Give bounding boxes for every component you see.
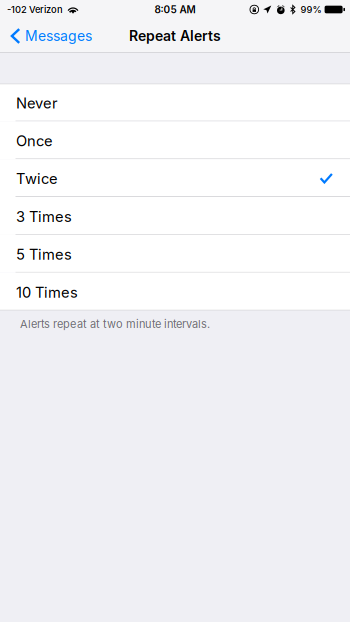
button[interactable]: 10 Times (0, 273, 350, 310)
staticText: 99% (301, 4, 322, 15)
button[interactable]: 5 Times (0, 235, 350, 273)
staticText: -102 Verizon (7, 4, 63, 15)
staticText: 5 Times (16, 245, 72, 263)
button[interactable]: Messages (0, 19, 100, 53)
staticText: Never (16, 94, 58, 112)
button[interactable]: Once (0, 121, 350, 159)
staticText: Twice (16, 170, 58, 188)
button[interactable]: 3 Times (0, 197, 350, 235)
staticText: Repeat Alerts (129, 27, 221, 44)
staticText: 3 Times (16, 208, 72, 225)
staticText: 10 Times (16, 284, 78, 301)
staticText: Once (16, 132, 53, 150)
button[interactable]: Twice (0, 159, 350, 197)
button[interactable]: Never (0, 84, 350, 121)
staticText: Alerts repeat at two minute intervals. (20, 317, 210, 331)
staticText: 8:05 AM (154, 3, 195, 16)
staticText: Messages (25, 27, 92, 44)
